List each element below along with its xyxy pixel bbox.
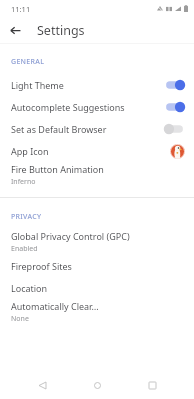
button[interactable]: Fire Button Animation	[0, 162, 194, 188]
button[interactable]: On	[164, 101, 185, 113]
button[interactable]: Set as Default Browser	[0, 118, 194, 140]
button[interactable]: Automatically Clear…	[0, 299, 194, 325]
staticText: 11:11	[11, 4, 31, 14]
staticText: Set as Default Browser	[11, 123, 107, 135]
staticText: Inferno	[11, 177, 36, 187]
button[interactable]: Global Privacy Control (GPC)	[0, 229, 194, 255]
button[interactable]: App Icon	[170, 144, 185, 159]
button[interactable]: Location	[0, 277, 194, 299]
button[interactable]: Autocomplete Suggestions	[0, 96, 194, 118]
button[interactable]: Back	[4, 19, 26, 41]
staticText: PRIVACY	[11, 212, 42, 222]
button[interactable]: On	[164, 79, 185, 91]
staticText: Location	[11, 282, 48, 294]
staticText: GENERAL	[11, 57, 45, 67]
button[interactable]: Fireproof Sites	[0, 255, 194, 277]
button[interactable]: Back	[29, 372, 55, 398]
staticText: Autocomplete Suggestions	[11, 101, 125, 113]
staticText: Global Privacy Control (GPC)	[11, 230, 130, 242]
staticText: None	[11, 314, 29, 324]
button[interactable]: Home	[84, 372, 110, 398]
button[interactable]: Off	[164, 123, 185, 135]
button[interactable]: App Icon	[0, 140, 194, 162]
staticText: App Icon	[11, 145, 49, 157]
button[interactable]: Light Theme	[0, 74, 194, 96]
staticText: Automatically Clear…	[11, 300, 99, 312]
staticText: Fireproof Sites	[11, 260, 72, 272]
staticText: Light Theme	[11, 79, 64, 91]
staticText: Enabled	[11, 244, 38, 254]
staticText: Fire Button Animation	[11, 163, 104, 175]
button[interactable]: Recent apps	[139, 372, 165, 398]
staticText: Settings	[37, 22, 85, 39]
